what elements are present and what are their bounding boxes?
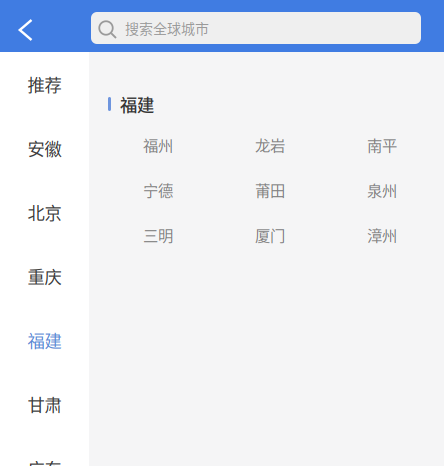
button[interactable]: 厦门 — [214, 212, 326, 257]
staticText: 北京 — [27, 199, 61, 225]
button[interactable]: 北京 — [0, 180, 89, 244]
button[interactable]: 泉州 — [326, 167, 438, 212]
staticText: 漳州 — [367, 223, 397, 246]
staticText: 龙岩 — [255, 133, 285, 156]
button[interactable]: 安徽 — [0, 116, 89, 180]
button[interactable]: 莆田 — [214, 167, 326, 212]
button[interactable]: 福州 — [102, 122, 214, 167]
button[interactable]: 宁德 — [102, 167, 214, 212]
staticText: 福建 — [27, 327, 61, 353]
staticText: 福建 — [120, 91, 154, 117]
button[interactable]: 重庆 — [0, 244, 89, 308]
staticText: 福州 — [143, 133, 173, 156]
button[interactable]: 漳州 — [326, 212, 438, 257]
staticText: 安徽 — [27, 135, 61, 161]
button[interactable]: 返回 — [0, 0, 91, 52]
staticText: 重庆 — [27, 263, 61, 289]
staticText: 南平 — [367, 133, 397, 156]
button[interactable]: 推荐 — [0, 52, 89, 116]
staticText: 甘肃 — [27, 391, 61, 417]
staticText: 广东 — [27, 455, 61, 466]
staticText: 莆田 — [255, 178, 285, 201]
button[interactable]: 南平 — [326, 122, 438, 167]
button[interactable]: 龙岩 — [214, 122, 326, 167]
button[interactable]: 广东 — [0, 436, 89, 466]
staticText: 搜索全球城市 — [125, 18, 209, 38]
staticText: 泉州 — [367, 178, 397, 201]
staticText: 厦门 — [255, 223, 285, 246]
button[interactable]: 福建 — [0, 308, 89, 372]
staticText: 宁德 — [143, 178, 173, 201]
staticText: 三明 — [143, 223, 173, 246]
button[interactable]: 甘肃 — [0, 372, 89, 436]
staticText: 推荐 — [27, 71, 61, 97]
button[interactable]: 三明 — [102, 212, 214, 257]
button[interactable]: 搜索全球城市 — [91, 10, 421, 42]
